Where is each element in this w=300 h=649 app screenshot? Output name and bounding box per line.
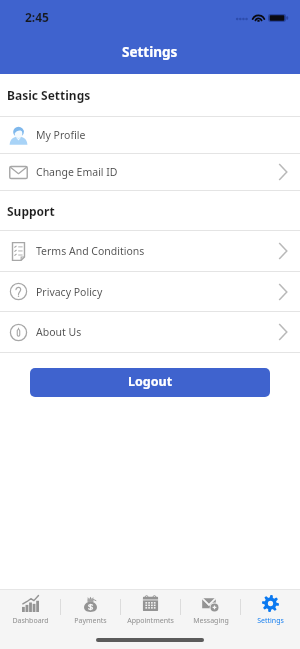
- button[interactable]: Privacy Policy: [0, 272, 300, 312]
- staticText: Basic Settings: [7, 87, 91, 103]
- button[interactable]: Terms And Conditions: [0, 231, 300, 272]
- button[interactable]: Payments: [61, 590, 120, 631]
- button[interactable]: My Profile: [0, 117, 300, 154]
- staticText: Support: [7, 203, 55, 219]
- button[interactable]: Logout: [30, 368, 270, 397]
- staticText: Settings: [122, 43, 178, 61]
- button[interactable]: Change Email ID: [0, 154, 300, 191]
- staticText: My Profile: [36, 128, 86, 142]
- staticText: Terms And Conditions: [36, 244, 145, 258]
- staticText: Logout: [128, 373, 173, 390]
- staticText: Privacy Policy: [36, 285, 103, 299]
- button[interactable]: Settings: [241, 590, 300, 631]
- staticText: Dashboard: [12, 616, 49, 626]
- staticText: Payments: [74, 616, 107, 626]
- staticText: Appointments: [127, 616, 174, 626]
- staticText: Messaging: [193, 616, 229, 626]
- button[interactable]: Messaging: [181, 590, 240, 631]
- button[interactable]: About Us: [0, 312, 300, 353]
- button[interactable]: Dashboard: [0, 590, 60, 631]
- staticText: About Us: [36, 325, 82, 339]
- staticText: 2:45: [25, 9, 49, 25]
- staticText: Settings: [257, 616, 284, 626]
- button[interactable]: Appointments: [121, 590, 180, 631]
- staticText: Change Email ID: [36, 165, 118, 179]
